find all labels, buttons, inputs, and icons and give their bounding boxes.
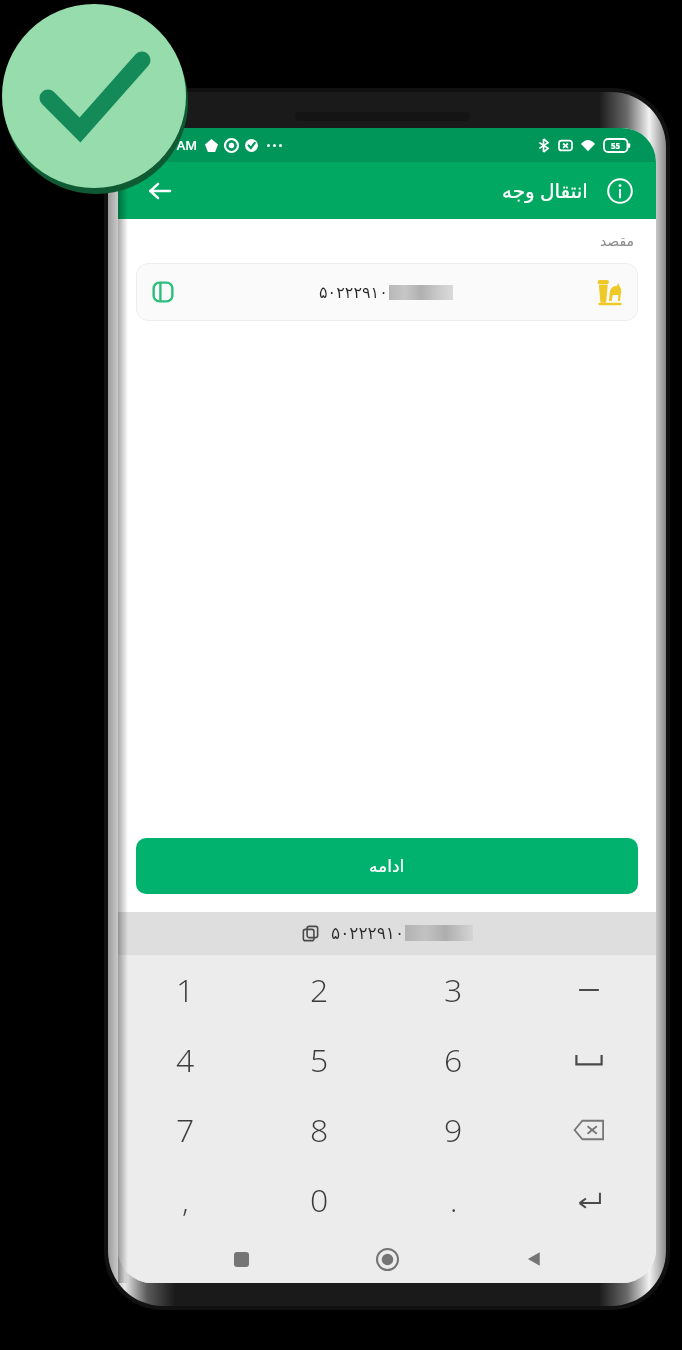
staticText: 3 bbox=[444, 968, 463, 1012]
button[interactable]: 5 bbox=[252, 1025, 386, 1095]
button[interactable]: 2 bbox=[252, 955, 386, 1025]
button[interactable] bbox=[521, 955, 656, 1025]
button[interactable]: 9 bbox=[386, 1095, 521, 1165]
button[interactable]: 8 bbox=[252, 1095, 386, 1165]
button[interactable]: 1 bbox=[118, 955, 252, 1025]
button[interactable]: 3 bbox=[386, 955, 521, 1025]
button[interactable]: 4 bbox=[118, 1025, 252, 1095]
staticText: 8 bbox=[310, 1108, 329, 1152]
button[interactable]: 0 bbox=[252, 1165, 386, 1235]
staticText: مقصد bbox=[118, 233, 634, 249]
staticText: 2 bbox=[310, 968, 329, 1012]
staticText: 4 bbox=[176, 1038, 195, 1082]
button[interactable] bbox=[521, 1025, 656, 1095]
staticText: 0 bbox=[310, 1178, 329, 1222]
staticText: 7 bbox=[176, 1108, 195, 1152]
staticText: انتقال وجه bbox=[502, 177, 588, 204]
button[interactable]: . bbox=[386, 1165, 521, 1235]
staticText: 1 bbox=[176, 968, 195, 1012]
button[interactable]: Information bbox=[598, 169, 642, 213]
staticText: ۵۰۲۲۲۹۱۰ bbox=[319, 283, 388, 302]
staticText: 6 bbox=[444, 1038, 463, 1082]
staticText: 55 bbox=[611, 140, 621, 151]
staticText: 9 bbox=[444, 1108, 463, 1152]
button[interactable]: ۵۰۲۲۲۹۱۰ bbox=[118, 912, 656, 954]
button[interactable]: Recents bbox=[217, 1235, 265, 1283]
button[interactable]: Back bbox=[138, 169, 182, 213]
staticText: 5 AM bbox=[166, 136, 198, 154]
staticText: ۵۰۲۲۲۹۱۰ bbox=[331, 923, 405, 943]
button[interactable]: 7 bbox=[118, 1095, 252, 1165]
button[interactable]: , bbox=[118, 1165, 252, 1235]
button[interactable]: ۵۰۲۲۲۹۱۰ bbox=[136, 263, 638, 321]
button[interactable] bbox=[521, 1095, 656, 1165]
staticText: ادامه bbox=[369, 856, 405, 876]
button[interactable] bbox=[521, 1165, 656, 1235]
button[interactable]: 6 bbox=[386, 1025, 521, 1095]
button[interactable]: Home bbox=[363, 1235, 411, 1283]
staticText: . bbox=[450, 1180, 458, 1221]
button[interactable]: Back bbox=[510, 1235, 558, 1283]
button[interactable]: ادامه bbox=[136, 838, 638, 894]
staticText: 5 bbox=[310, 1038, 329, 1082]
staticText: , bbox=[182, 1180, 189, 1221]
